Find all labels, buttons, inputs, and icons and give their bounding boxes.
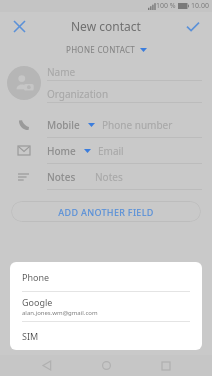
staticText: alan.jones.wm@gmail.com — [22, 309, 98, 317]
staticText: Notes — [47, 170, 76, 184]
staticText: Phone number — [102, 118, 173, 132]
button[interactable]: Add photo — [7, 66, 41, 100]
staticText: Organization — [47, 87, 109, 101]
staticText: 10.00 — [191, 1, 209, 11]
staticText: ADD ANOTHER FIELD — [58, 206, 154, 218]
button[interactable]: ADD ANOTHER FIELD — [11, 201, 201, 222]
button[interactable]: Google — [10, 292, 202, 321]
staticText: New contact — [71, 18, 141, 34]
staticText: Google — [22, 296, 53, 308]
staticText: Notes — [95, 170, 123, 184]
staticText: PHONE CONTACT — [66, 44, 136, 55]
staticText: SIM — [22, 330, 39, 342]
button[interactable]: Mobile — [0, 112, 212, 138]
button[interactable]: Home — [93, 355, 119, 376]
button[interactable]: SIM — [10, 322, 202, 350]
button[interactable]: Save — [182, 15, 204, 37]
staticText: 100 % — [156, 1, 176, 11]
button[interactable]: Back — [34, 355, 60, 376]
staticText: Email — [98, 144, 124, 158]
button[interactable]: PHONE CONTACT — [66, 44, 147, 55]
staticText: Phone — [22, 271, 50, 283]
button[interactable]: Recent apps — [153, 355, 179, 376]
staticText: Name — [47, 65, 76, 79]
button[interactable]: Close — [8, 15, 30, 37]
button[interactable]: Phone — [10, 262, 202, 291]
button[interactable]: Notes — [0, 164, 212, 190]
staticText: Mobile — [47, 118, 80, 132]
button[interactable]: Home — [0, 138, 212, 164]
staticText: Home — [47, 144, 76, 158]
